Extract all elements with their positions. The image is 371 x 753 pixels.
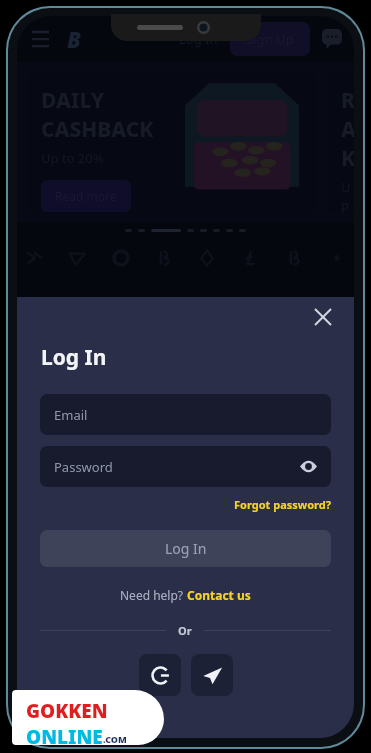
staticText: Email	[54, 406, 88, 424]
staticText: B	[67, 24, 81, 54]
button[interactable]: Contact us	[187, 587, 251, 603]
button[interactable]: Sign in with Telegram	[191, 654, 233, 696]
staticText: Contact us	[187, 587, 251, 603]
button[interactable]: Log In	[173, 24, 224, 54]
staticText: Need help?	[120, 587, 187, 603]
button[interactable]: Password	[40, 446, 331, 487]
staticText: Forgot password?	[234, 497, 331, 512]
button[interactable]: Close	[308, 302, 338, 332]
staticText: Sign Up	[246, 30, 294, 48]
button[interactable]: Menu	[27, 26, 53, 52]
other: Show password	[300, 458, 317, 475]
staticText: ONLINE	[26, 724, 103, 745]
staticText: Log In	[165, 539, 207, 558]
staticText: Password	[54, 458, 113, 476]
button[interactable]: Email	[40, 394, 331, 435]
staticText: Up to 1	[341, 178, 354, 214]
staticText: CASHBACK	[41, 115, 154, 144]
staticText: Up to 20%	[41, 149, 104, 167]
staticText: Log In	[179, 30, 218, 48]
button[interactable]: Sign Up	[230, 22, 310, 56]
button[interactable]: Chat	[320, 27, 344, 51]
button[interactable]: Sign in with Google	[139, 654, 181, 696]
staticText: GOKKEN	[26, 698, 108, 724]
button[interactable]: Log In	[40, 530, 331, 567]
staticText: Read more	[55, 188, 117, 204]
staticText: RAK	[341, 86, 354, 173]
staticText: .COM	[103, 733, 127, 745]
staticText: DAILY	[41, 86, 105, 115]
button[interactable]: Forgot password?	[234, 497, 331, 512]
staticText: Log In	[41, 343, 107, 372]
staticText: Or	[178, 623, 192, 638]
